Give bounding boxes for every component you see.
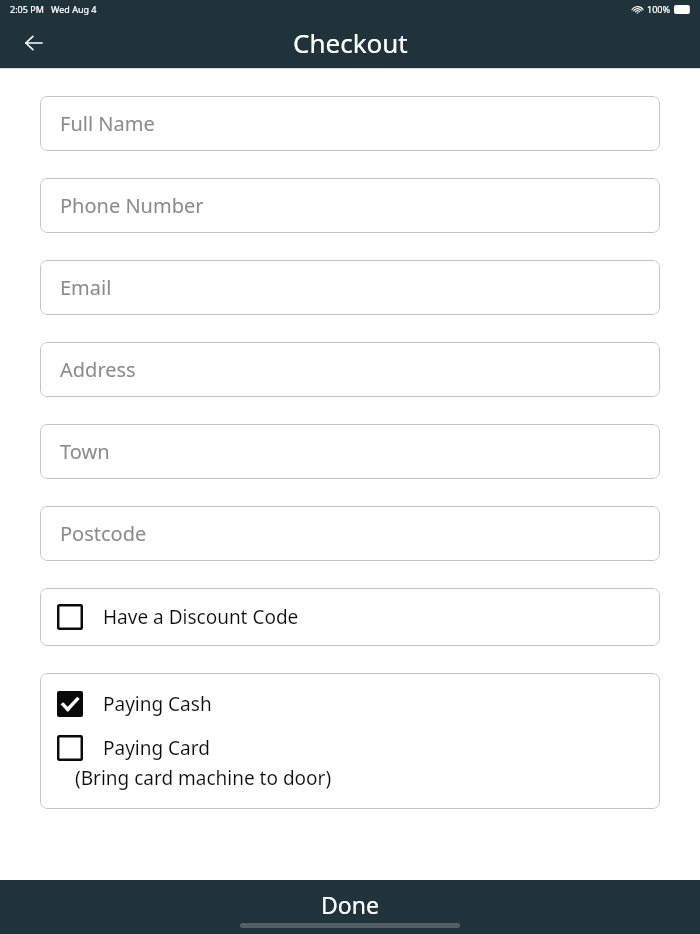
staticText: Checkout [293,25,408,60]
button[interactable]: Done [0,880,700,934]
button[interactable]: Full Name [40,96,660,151]
staticText: (Bring card machine to door) [75,765,332,791]
staticText: Paying Cash [103,691,212,717]
staticText: Postcode [60,520,147,547]
staticText: Full Name [60,110,155,137]
staticText: 2:05 PM [10,3,44,15]
staticText: Address [60,356,136,383]
staticText: Town [60,438,110,465]
staticText: Wed Aug 4 [51,3,97,15]
staticText: Done [321,889,379,920]
staticText: Paying Card [103,735,210,761]
button[interactable]: Paying Cash [40,673,660,725]
button[interactable]: Phone Number [40,178,660,233]
staticText: 100% [647,3,670,15]
button[interactable]: Town [40,424,660,479]
button[interactable]: Back [12,21,56,65]
staticText: Have a Discount Code [103,604,299,630]
staticText: Email [60,274,112,301]
button[interactable]: Email [40,260,660,315]
button[interactable]: Postcode [40,506,660,561]
button[interactable]: Address [40,342,660,397]
button[interactable]: Paying Card [40,725,660,809]
button[interactable]: Have a Discount Code [40,588,660,646]
staticText: Phone Number [60,192,204,219]
